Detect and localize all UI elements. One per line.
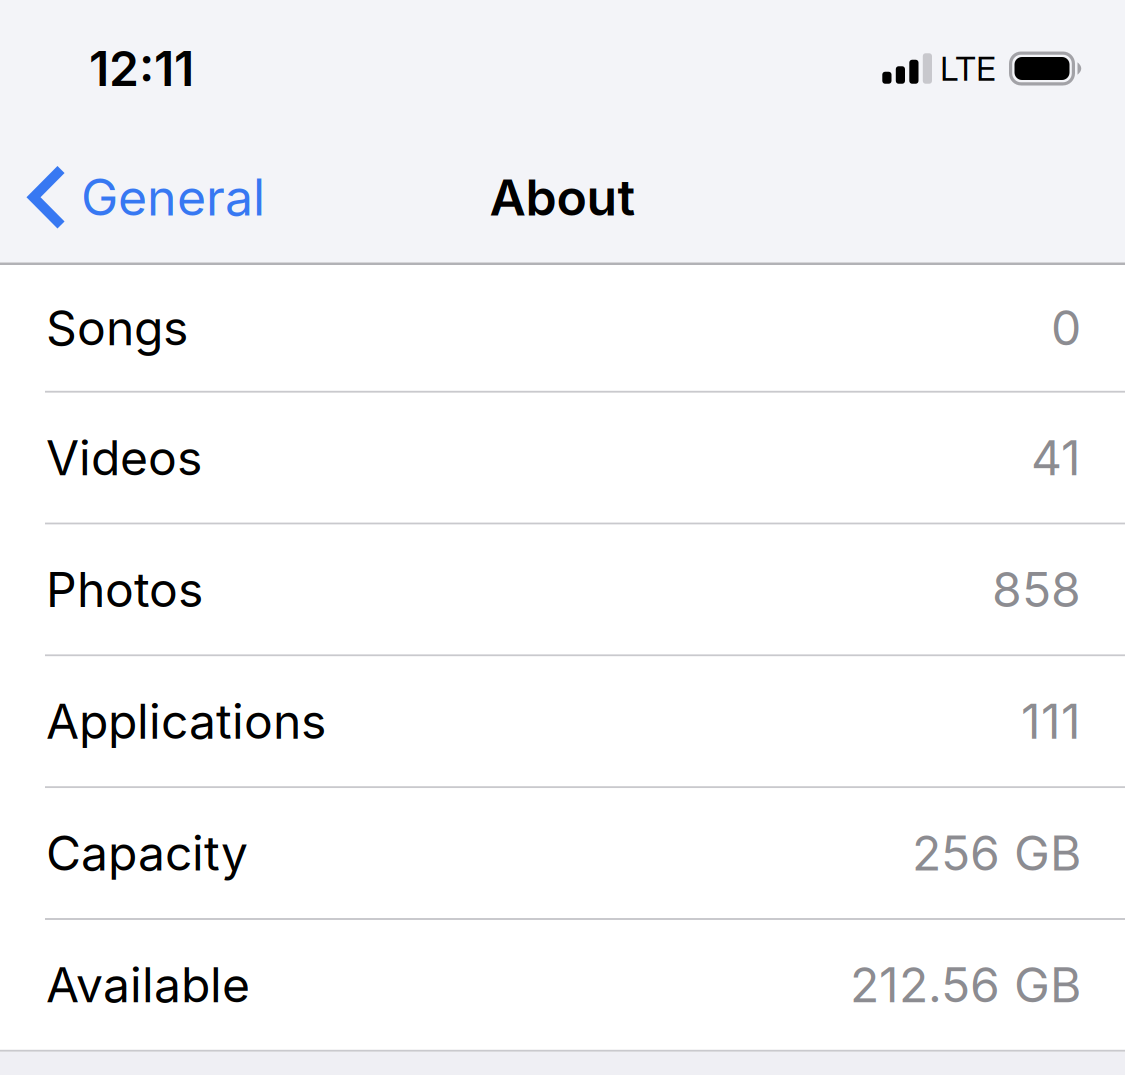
staticText: LTE [940, 48, 996, 89]
staticText: 0 [1051, 299, 1081, 357]
staticText: 256 GB [912, 824, 1081, 882]
staticText: About [489, 167, 635, 227]
staticText: 858 [992, 560, 1081, 619]
staticText: Applications [46, 692, 326, 750]
staticText: Available [46, 956, 250, 1014]
staticText: Capacity [46, 824, 248, 882]
button[interactable]: Songs [0, 265, 1125, 391]
button[interactable]: Back to General [0, 167, 265, 227]
staticText: 41 [1031, 429, 1081, 487]
staticText: General [81, 167, 265, 227]
staticText: 12:11 [89, 39, 194, 98]
button[interactable]: Applications [0, 656, 1125, 786]
button[interactable]: Photos [0, 525, 1125, 654]
button[interactable]: Capacity [0, 788, 1125, 918]
staticText: 212.56 GB [850, 956, 1081, 1014]
button[interactable]: Videos [0, 393, 1125, 523]
staticText: Photos [46, 560, 203, 619]
staticText: 111 [1021, 692, 1081, 750]
button[interactable]: Available [0, 920, 1125, 1050]
staticText: Songs [46, 299, 188, 357]
staticText: Videos [46, 429, 202, 487]
